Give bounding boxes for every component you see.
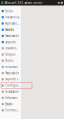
button[interactable]: Soporte técnico: [0, 76, 21, 82]
button[interactable]: Centros de admin: [0, 107, 21, 113]
button[interactable]: Instalación: [0, 89, 21, 95]
staticText: Facturación: [5, 34, 19, 38]
staticText: Instalación: [5, 90, 19, 93]
staticText: Facturación: [5, 71, 19, 75]
button[interactable]: Grupos: [0, 51, 21, 58]
staticText: Estado: [5, 28, 14, 31]
staticText: Aplicaciones: [5, 22, 20, 25]
staticText: Grupos: [5, 53, 15, 56]
button[interactable]: Informes: [0, 95, 21, 101]
button[interactable]: Cuenta: [60, 2, 64, 4]
staticText: Estado: [5, 102, 13, 106]
button[interactable]: Soporte: [0, 39, 21, 45]
button[interactable]: Configuración: [0, 82, 21, 89]
staticText: Centros de admin: [5, 108, 20, 112]
button[interactable]: Facturación: [0, 70, 21, 76]
button[interactable]: Menú: [0, 0, 4, 6]
staticText: Recursos: [5, 65, 17, 69]
button[interactable]: Inicio: [0, 8, 21, 14]
staticText: Configuración: [5, 84, 20, 87]
staticText: Usuarios activos: [5, 15, 20, 19]
button[interactable]: Recursos: [0, 64, 21, 70]
button[interactable]: Estado: [0, 101, 21, 107]
button[interactable]: Usuarios: [0, 45, 21, 51]
staticText: Roles: [5, 59, 13, 62]
staticText: Soporte técnico: [5, 77, 20, 81]
button[interactable]: Ayuda: [57, 2, 60, 4]
staticText: Microsoft 365 admin center: [4, 1, 42, 5]
button[interactable]: Roles: [0, 58, 21, 64]
staticText: Usuarios: [5, 46, 16, 50]
button[interactable]: Estado: [0, 27, 21, 33]
staticText: Informes: [5, 96, 17, 100]
staticText: Inicio: [5, 9, 13, 13]
button[interactable]: Usuarios activos: [0, 14, 21, 20]
button[interactable]: Facturación: [0, 33, 21, 39]
button[interactable]: Aplicaciones: [0, 20, 21, 27]
staticText: Soporte: [5, 40, 16, 44]
